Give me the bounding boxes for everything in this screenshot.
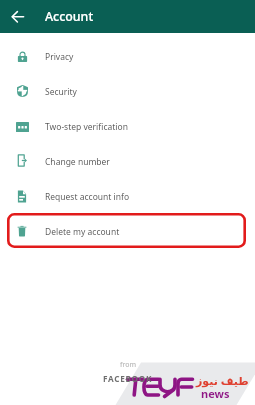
staticText: FACEBOOK [103, 373, 153, 384]
staticText: طيف نيوز [196, 373, 249, 388]
staticText: Two-step verification [45, 121, 128, 133]
button[interactable]: Security [0, 74, 255, 109]
staticText: Account [45, 8, 94, 25]
staticText: Request account info [45, 191, 130, 203]
button[interactable]: Delete my account [0, 214, 255, 249]
staticText: Delete my account [45, 226, 120, 238]
staticText: from [120, 360, 136, 370]
button[interactable]: Privacy [0, 39, 255, 74]
staticText: Security [45, 86, 77, 98]
staticText: Change number [45, 156, 110, 168]
button[interactable]: Request account info [0, 179, 255, 214]
button[interactable]: Change number [0, 144, 255, 179]
button[interactable]: Two-step verification [0, 109, 255, 144]
button[interactable]: Back [6, 5, 30, 29]
staticText: Privacy [45, 51, 74, 63]
staticText: news [201, 386, 230, 401]
